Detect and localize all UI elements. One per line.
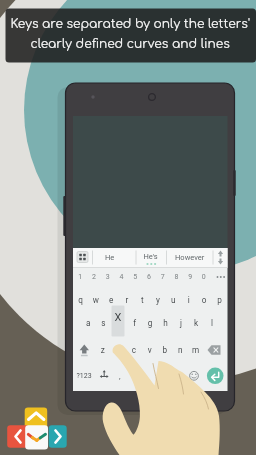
button[interactable]: Keyboard preview: [0, 0, 256, 455]
